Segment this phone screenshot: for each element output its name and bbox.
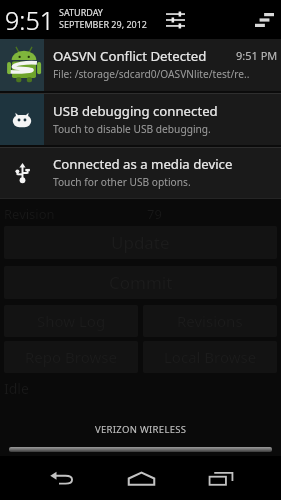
staticText: Connected as a media device [53, 155, 233, 173]
button[interactable]: Home [118, 459, 165, 497]
staticText: VERIZON WIRELESS [95, 423, 187, 436]
button[interactable]: Back [39, 459, 86, 497]
button[interactable]: Clear all notifications [249, 5, 279, 35]
staticText: Touch for other USB options. [53, 175, 191, 189]
staticText: 9:51 [5, 3, 54, 37]
staticText: File: /storage/sdcard0/OASVNlite/test/re… [53, 67, 250, 81]
button[interactable]: USB debugging connected [0, 94, 281, 145]
staticText: 9:51 PM [236, 48, 278, 63]
staticText: OASVN Conflict Detected [53, 47, 207, 65]
staticText: 79 [147, 205, 162, 223]
button[interactable]: OASVN Conflict Detected [0, 39, 281, 91]
staticText: SEPTEMBER 29, 2012 [59, 18, 147, 30]
staticText: Idle [4, 379, 29, 398]
staticText: USB debugging connected [53, 102, 218, 120]
staticText: Revision [4, 205, 55, 223]
button[interactable]: Connected as a media device [0, 148, 281, 198]
button[interactable]: Recent apps [197, 459, 244, 497]
staticText: Touch to disable USB debugging. [53, 122, 211, 136]
staticText: SATURDAY [59, 6, 103, 18]
button[interactable]: Quick settings [161, 6, 189, 34]
